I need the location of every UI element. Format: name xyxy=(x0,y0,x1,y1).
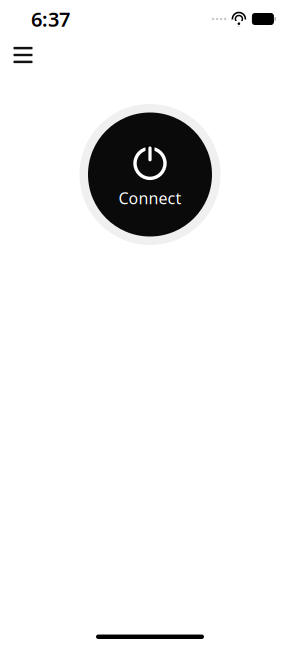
staticText: Connect xyxy=(118,187,181,209)
staticText: 6:37 xyxy=(31,6,70,32)
button[interactable]: Menu xyxy=(1,33,45,77)
button[interactable]: Connect xyxy=(79,104,220,245)
